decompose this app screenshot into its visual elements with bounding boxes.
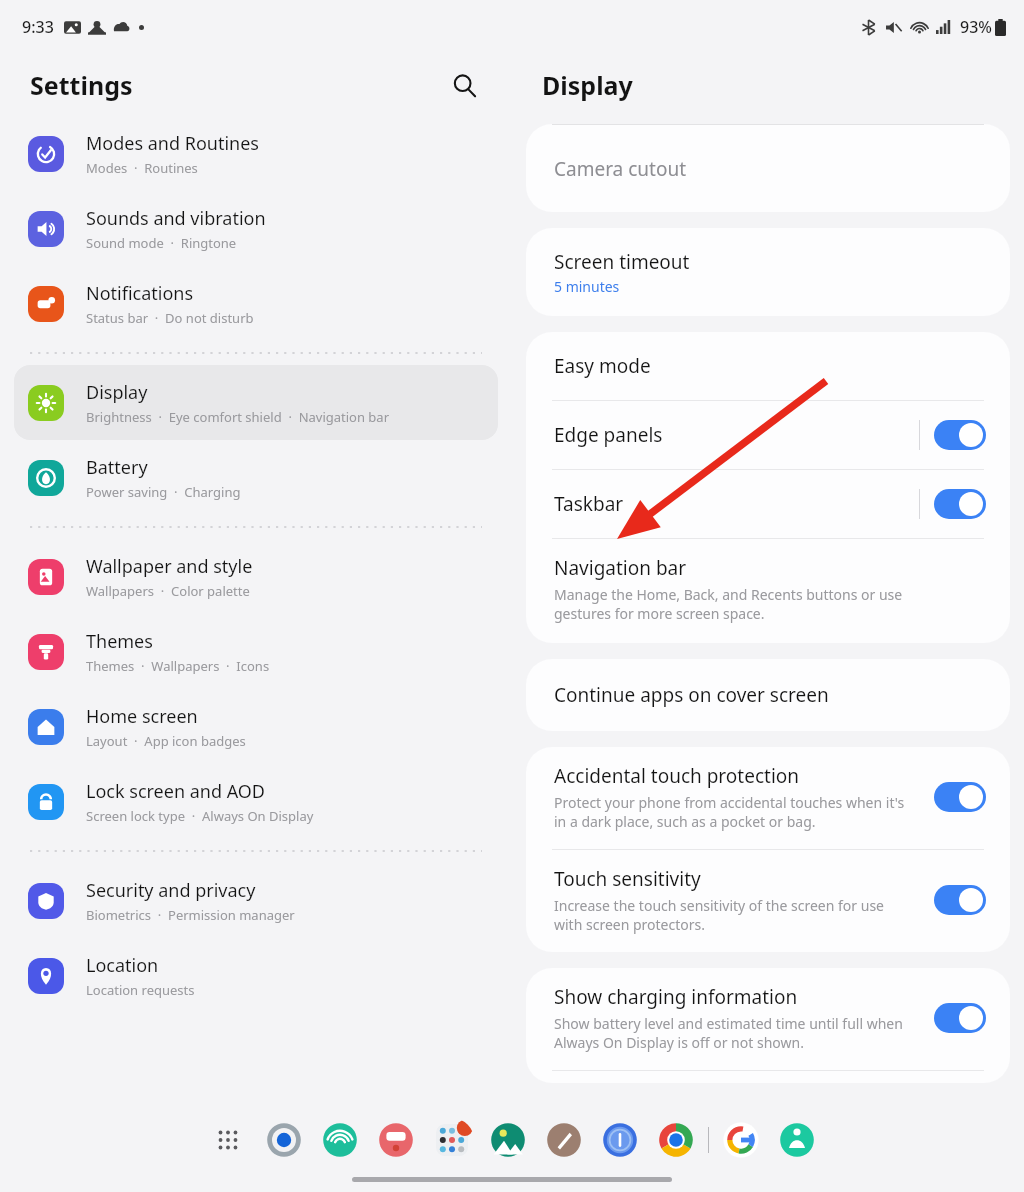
- button[interactable]: Accidental touch protection: [526, 747, 1010, 849]
- staticText: Protect your phone from accidental touch…: [554, 793, 914, 831]
- button[interactable]: Toggle on: [934, 782, 986, 812]
- button[interactable]: notes: [542, 1118, 586, 1162]
- staticText: Manage the Home, Back, and Recents butto…: [554, 585, 950, 623]
- button[interactable]: google: [719, 1118, 763, 1162]
- button[interactable]: Notifications: [14, 266, 498, 341]
- staticText: 93%: [960, 16, 992, 38]
- button[interactable]: Toggle on: [934, 489, 986, 519]
- button[interactable]: Navigation bar: [526, 539, 1010, 643]
- staticText: Easy mode: [554, 353, 651, 379]
- button[interactable]: Toggle on: [934, 420, 986, 450]
- button[interactable]: Modes and Routines: [14, 116, 498, 191]
- staticText: Settings: [30, 68, 133, 102]
- staticText: Biometrics · Permission manager: [86, 906, 295, 924]
- button[interactable]: Toggle on: [934, 885, 986, 915]
- staticText: Increase the touch sensitivity of the sc…: [554, 896, 914, 934]
- staticText: Power saving · Charging: [86, 483, 241, 501]
- staticText: Home screen: [86, 704, 198, 729]
- staticText: Notifications: [86, 281, 194, 306]
- staticText: Camera cutout: [554, 156, 687, 182]
- button[interactable]: folder: [430, 1118, 474, 1162]
- staticText: Navigation bar: [554, 555, 687, 581]
- button[interactable]: camera: [262, 1118, 306, 1162]
- button[interactable]: onepw: [598, 1118, 642, 1162]
- staticText: Battery: [86, 455, 148, 480]
- staticText: Wallpaper and style: [86, 554, 253, 579]
- button[interactable]: Lock screen and AOD: [14, 764, 498, 839]
- staticText: Modes and Routines: [86, 131, 259, 156]
- staticText: Accidental touch protection: [554, 763, 800, 789]
- staticText: 5 minutes: [554, 277, 620, 296]
- staticText: Display: [542, 68, 633, 102]
- staticText: Location: [86, 953, 159, 978]
- staticText: Wallpapers · Color palette: [86, 582, 250, 600]
- staticText: Lock screen and AOD: [86, 779, 266, 804]
- button[interactable]: Themes: [14, 614, 498, 689]
- staticText: Taskbar: [554, 491, 624, 517]
- button[interactable]: Display: [14, 365, 498, 440]
- button[interactable]: Security and privacy: [14, 863, 498, 938]
- staticText: Screen lock type · Always On Display: [86, 807, 314, 825]
- button[interactable]: spotify: [318, 1118, 362, 1162]
- button[interactable]: Toggle on: [934, 1003, 986, 1033]
- staticText: Layout · App icon badges: [86, 732, 246, 750]
- button[interactable]: Wallpaper and style: [14, 539, 498, 614]
- button[interactable]: Battery: [14, 440, 498, 515]
- button[interactable]: All apps: [206, 1118, 250, 1162]
- staticText: Touch sensitivity: [554, 866, 701, 892]
- button[interactable]: Show charging information: [526, 968, 1010, 1070]
- button[interactable]: Screen timeout: [526, 228, 1010, 316]
- button[interactable]: Location: [14, 938, 498, 1013]
- staticText: 9:33: [22, 16, 54, 38]
- staticText: Show charging information: [554, 984, 798, 1010]
- staticText: Edge panels: [554, 422, 663, 448]
- staticText: Screen timeout: [554, 249, 690, 275]
- button[interactable]: photos: [486, 1118, 530, 1162]
- button[interactable]: Taskbar: [526, 470, 1010, 538]
- button[interactable]: Camera cutout: [526, 125, 1010, 212]
- staticText: Location requests: [86, 981, 195, 999]
- button[interactable]: Edge panels: [526, 401, 1010, 469]
- button[interactable]: gmail: [374, 1118, 418, 1162]
- staticText: Brightness · Eye comfort shield · Naviga…: [86, 408, 390, 426]
- staticText: Security and privacy: [86, 878, 256, 903]
- staticText: Continue apps on cover screen: [554, 682, 829, 708]
- staticText: Themes: [86, 629, 153, 654]
- button[interactable]: Sounds and vibration: [14, 191, 498, 266]
- button[interactable]: Touch sensitivity: [526, 850, 1010, 952]
- button[interactable]: chrome: [654, 1118, 698, 1162]
- staticText: Display: [86, 380, 148, 405]
- button[interactable]: Home screen: [14, 689, 498, 764]
- staticText: Modes · Routines: [86, 159, 198, 177]
- staticText: Sound mode · Ringtone: [86, 234, 237, 252]
- button[interactable]: Continue apps on cover screen: [526, 659, 1010, 731]
- staticText: Status bar · Do not disturb: [86, 309, 254, 327]
- button[interactable]: Search: [442, 63, 486, 107]
- staticText: Sounds and vibration: [86, 206, 266, 231]
- button[interactable]: meditate: [775, 1118, 819, 1162]
- staticText: Themes · Wallpapers · Icons: [86, 657, 270, 675]
- staticText: Show battery level and estimated time un…: [554, 1014, 914, 1052]
- button[interactable]: Easy mode: [526, 332, 1010, 400]
